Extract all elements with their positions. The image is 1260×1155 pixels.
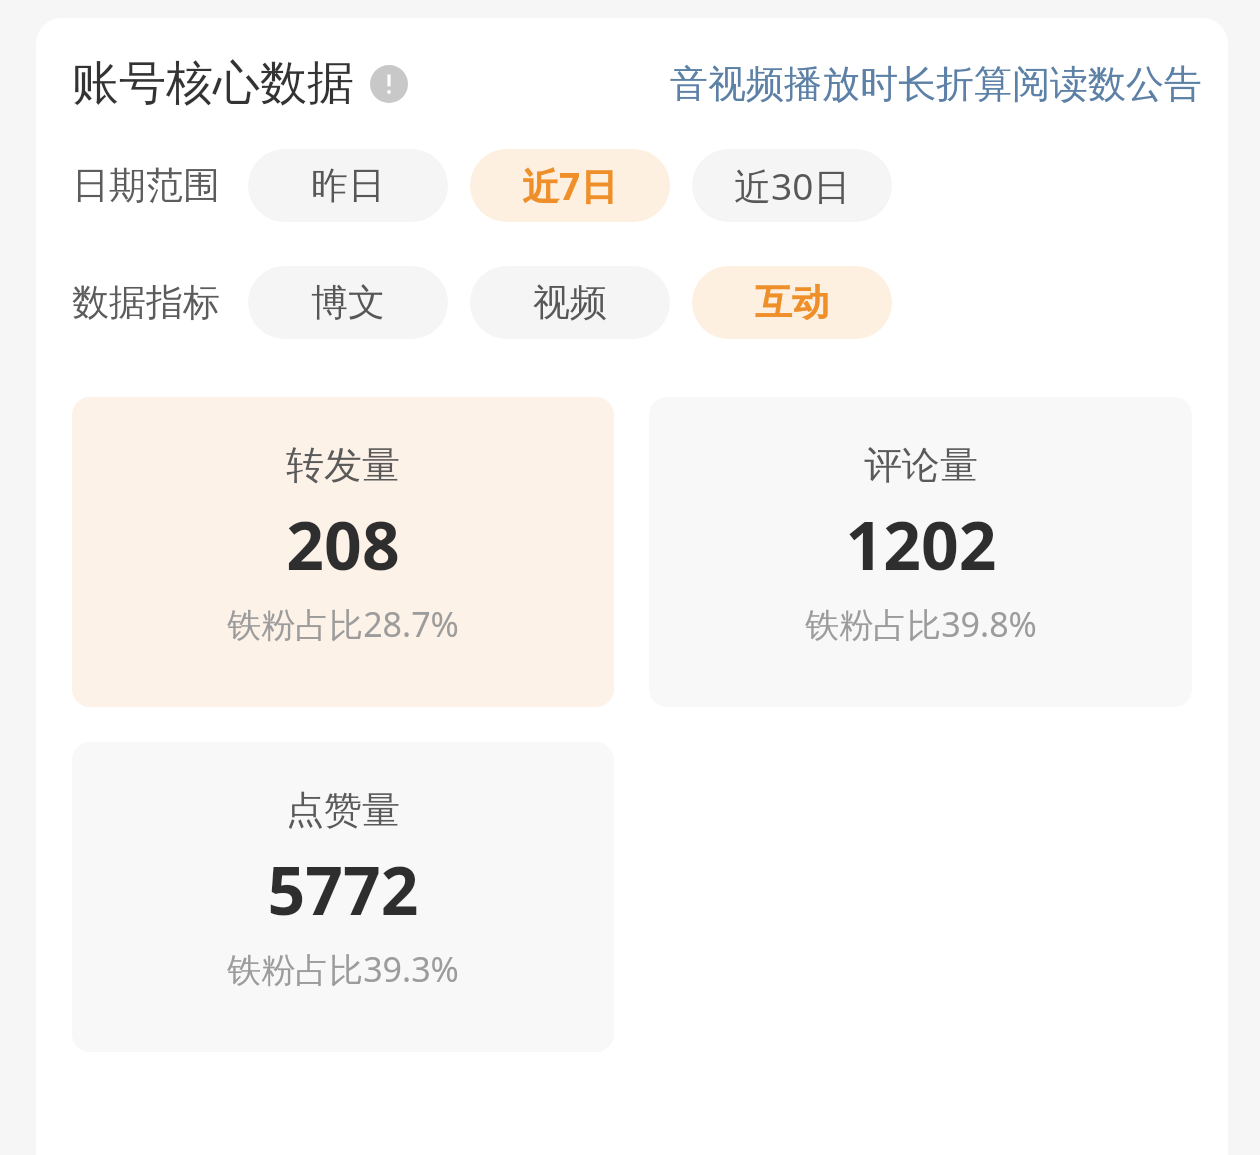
staticText: 音视频播放时长折算阅读数公告 <box>670 60 1202 108</box>
staticText: 互动 <box>755 279 829 326</box>
button[interactable]: 互动 <box>692 266 892 339</box>
button[interactable]: 转发量 <box>72 397 614 707</box>
button[interactable]: 近30日 <box>692 149 892 222</box>
button[interactable]: 近7日 <box>470 149 670 222</box>
staticText: 数据指标 <box>72 279 220 326</box>
staticText: 博文 <box>311 279 385 326</box>
staticText: 208 <box>286 499 400 589</box>
button[interactable]: 博文 <box>248 266 448 339</box>
staticText: 账号核心数据 <box>72 54 354 113</box>
staticText: 转发量 <box>286 441 400 489</box>
button[interactable]: 点赞量 <box>72 742 614 1052</box>
staticText: 铁粉占比28.7% <box>227 601 459 647</box>
staticText: 昨日 <box>311 162 385 209</box>
button[interactable]: 评论量 <box>649 397 1192 707</box>
button[interactable]: 音视频播放时长折算阅读数公告 <box>670 60 1202 108</box>
staticText: 铁粉占比39.8% <box>805 601 1037 647</box>
staticText: 1202 <box>845 499 997 589</box>
staticText: 近7日 <box>522 160 618 211</box>
button[interactable]: 说明 <box>370 65 408 103</box>
staticText: 点赞量 <box>286 786 400 834</box>
staticText: 日期范围 <box>72 162 220 209</box>
staticText: 视频 <box>533 279 607 326</box>
staticText: 评论量 <box>864 441 978 489</box>
button[interactable]: 昨日 <box>248 149 448 222</box>
button[interactable]: 视频 <box>470 266 670 339</box>
staticText: 近30日 <box>734 160 851 211</box>
staticText: 铁粉占比39.3% <box>227 946 459 992</box>
staticText: 5772 <box>267 844 419 934</box>
